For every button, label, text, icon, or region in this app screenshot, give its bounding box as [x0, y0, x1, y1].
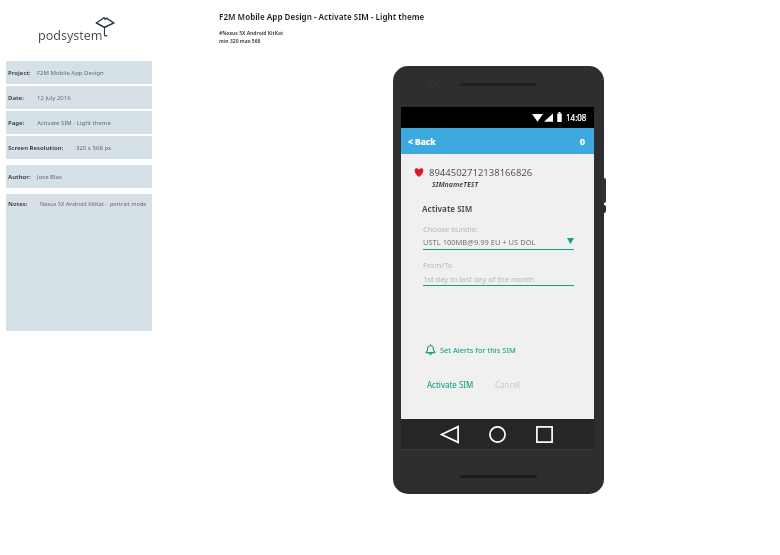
- staticText: 320 x 568 px: [76, 144, 112, 152]
- staticText: F2M Mobile App Design - Activate SIM - L…: [219, 11, 425, 22]
- staticText: Project:: [8, 69, 31, 77]
- staticText: F2M Mobile App Design: [37, 69, 104, 77]
- button[interactable]: < Back: [401, 128, 594, 154]
- staticText: Jose Blas: [37, 173, 62, 181]
- button[interactable]: Home: [485, 422, 509, 446]
- staticText: #Nexus 5X Android KitKat: [219, 30, 284, 37]
- staticText: 14:08: [566, 112, 587, 123]
- staticText: USTL 100MB@9.99 EU + US DOL: [423, 237, 536, 247]
- staticText: Notes:: [8, 200, 28, 208]
- button[interactable]: Cancel: [491, 375, 524, 394]
- staticText: Page:: [8, 119, 25, 127]
- button[interactable]: Back: [437, 422, 463, 446]
- staticText: Choose bundle:: [423, 224, 478, 234]
- staticText: Activate SIM: [422, 203, 473, 214]
- staticText: 12 July 2016: [37, 94, 71, 102]
- staticText: 0: [580, 136, 585, 148]
- staticText: < Back: [408, 136, 436, 148]
- staticText: Cancel: [495, 379, 520, 390]
- staticText: 8944502712138166826: [429, 166, 533, 179]
- staticText: SIMnameTEST: [432, 180, 479, 190]
- button[interactable]: Recents: [532, 422, 556, 446]
- staticText: Date:: [8, 94, 24, 102]
- staticText: From/To: [423, 260, 453, 270]
- staticText: 1st day to last day of the month: [423, 274, 535, 284]
- staticText: Activate SIM: [427, 379, 474, 390]
- button[interactable]: USTL 100MB@9.99 EU + US DOL: [423, 237, 574, 251]
- staticText: Screen Resolution:: [8, 144, 64, 152]
- button[interactable]: Activate SIM: [423, 375, 478, 394]
- staticText: Activate SIM - Light theme: [37, 119, 111, 127]
- staticText: podsystem: [38, 27, 103, 44]
- button[interactable]: Set Alerts for this SIM: [426, 344, 516, 355]
- staticText: Set Alerts for this SIM: [440, 345, 516, 355]
- staticText: min 320 max 568: [219, 38, 261, 45]
- staticText: Author:: [8, 173, 31, 181]
- staticText: Nexus 5X Android KitKat - portrait mode: [40, 200, 147, 208]
